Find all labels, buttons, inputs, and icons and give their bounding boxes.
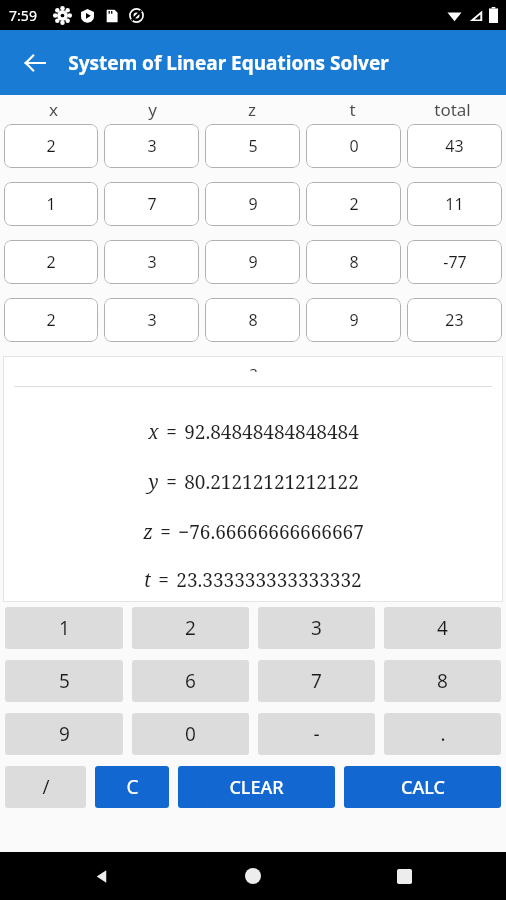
staticText: t [144, 567, 151, 593]
button[interactable]: 43 [407, 124, 502, 168]
staticText: CALC [401, 775, 445, 800]
button[interactable]: Recents [387, 859, 421, 893]
staticText: 3 [249, 363, 258, 372]
button[interactable]: 2 [4, 298, 98, 342]
button[interactable]: 23 [407, 298, 502, 342]
staticText: 6 [185, 668, 196, 694]
staticText: x [148, 419, 159, 445]
button[interactable]: 7 [104, 182, 199, 226]
button[interactable]: 8 [205, 298, 300, 342]
staticText: CLEAR [229, 775, 284, 800]
staticText: 7 [147, 193, 157, 215]
button[interactable]: 1 [5, 607, 123, 649]
button[interactable]: CLEAR [178, 766, 335, 808]
staticText: total [434, 98, 471, 121]
staticText: 92.84848484848484 [184, 419, 359, 445]
staticText: 2 [46, 309, 56, 331]
staticText: 0 [185, 721, 196, 747]
staticText: 80.21212121212122 [184, 469, 359, 495]
staticText: 5 [248, 135, 258, 157]
button[interactable]: / [5, 766, 86, 808]
staticText: System of Linear Equations Solver [68, 50, 389, 76]
staticText: 1 [46, 193, 56, 215]
staticText: x [49, 98, 58, 121]
button[interactable]: 2 [4, 124, 98, 168]
button[interactable]: 9 [205, 240, 300, 284]
staticText: t [349, 98, 356, 121]
staticText: 5 [59, 668, 70, 694]
button[interactable]: 6 [132, 660, 249, 702]
staticText: y [148, 98, 157, 121]
button[interactable]: 2 [306, 182, 401, 226]
staticText: z [143, 519, 153, 545]
staticText: 7:59 [9, 6, 37, 25]
button[interactable]: 9 [205, 182, 300, 226]
button[interactable]: 4 [384, 607, 501, 649]
staticText: 2 [185, 615, 196, 641]
staticText: -77 [443, 251, 467, 273]
button[interactable]: 8 [306, 240, 401, 284]
staticText: . [440, 721, 446, 747]
staticText: / [42, 774, 50, 800]
button[interactable]: 1 [4, 182, 98, 226]
staticText: 8 [349, 251, 359, 273]
button[interactable]: C [95, 766, 169, 808]
staticText: 3 [311, 615, 322, 641]
staticText: = [158, 567, 169, 593]
button[interactable]: 3 [258, 607, 375, 649]
staticText: 9 [248, 193, 258, 215]
button[interactable]: Back [85, 859, 119, 893]
button[interactable]: 9 [5, 713, 123, 755]
staticText: = [166, 419, 177, 445]
staticText: 2 [46, 251, 56, 273]
button[interactable]: 5 [5, 660, 123, 702]
staticText: 4 [437, 615, 448, 641]
staticText: 3 [147, 135, 157, 157]
button[interactable]: 3 [104, 298, 199, 342]
button[interactable]: 9 [306, 298, 401, 342]
button[interactable]: 7 [258, 660, 375, 702]
staticText: 3 [147, 251, 157, 273]
button[interactable]: Back [12, 40, 58, 86]
staticText: C [126, 774, 139, 800]
staticText: = [166, 469, 177, 495]
staticText: 11 [445, 193, 464, 215]
button[interactable]: 2 [132, 607, 249, 649]
staticText: 8 [248, 309, 258, 331]
button[interactable]: 3 [104, 240, 199, 284]
staticText: 7 [311, 668, 322, 694]
staticText: y [148, 469, 159, 495]
staticText: - [313, 721, 320, 747]
staticText: 2 [46, 135, 56, 157]
button[interactable]: 0 [306, 124, 401, 168]
button[interactable]: 5 [205, 124, 300, 168]
staticText: 1 [59, 615, 70, 641]
button[interactable]: . [384, 713, 501, 755]
button[interactable]: 3 [104, 124, 199, 168]
button[interactable]: 8 [384, 660, 501, 702]
button[interactable]: - [258, 713, 375, 755]
staticText: 2 [349, 193, 359, 215]
staticText: −76.66666666666667 [178, 519, 364, 545]
button[interactable]: Home [236, 859, 270, 893]
staticText: 23 [445, 309, 464, 331]
button[interactable]: 11 [407, 182, 502, 226]
button[interactable]: CALC [344, 766, 501, 808]
staticText: 9 [248, 251, 258, 273]
staticText: 0 [349, 135, 359, 157]
button[interactable]: -77 [407, 240, 502, 284]
button[interactable]: 0 [132, 713, 249, 755]
staticText: 9 [349, 309, 359, 331]
staticText: 8 [437, 668, 448, 694]
staticText: 43 [445, 135, 464, 157]
staticText: = [160, 519, 171, 545]
staticText: 23.333333333333332 [176, 567, 362, 593]
staticText: z [248, 98, 256, 121]
staticText: 9 [59, 721, 70, 747]
staticText: 3 [147, 309, 157, 331]
button[interactable]: 2 [4, 240, 98, 284]
